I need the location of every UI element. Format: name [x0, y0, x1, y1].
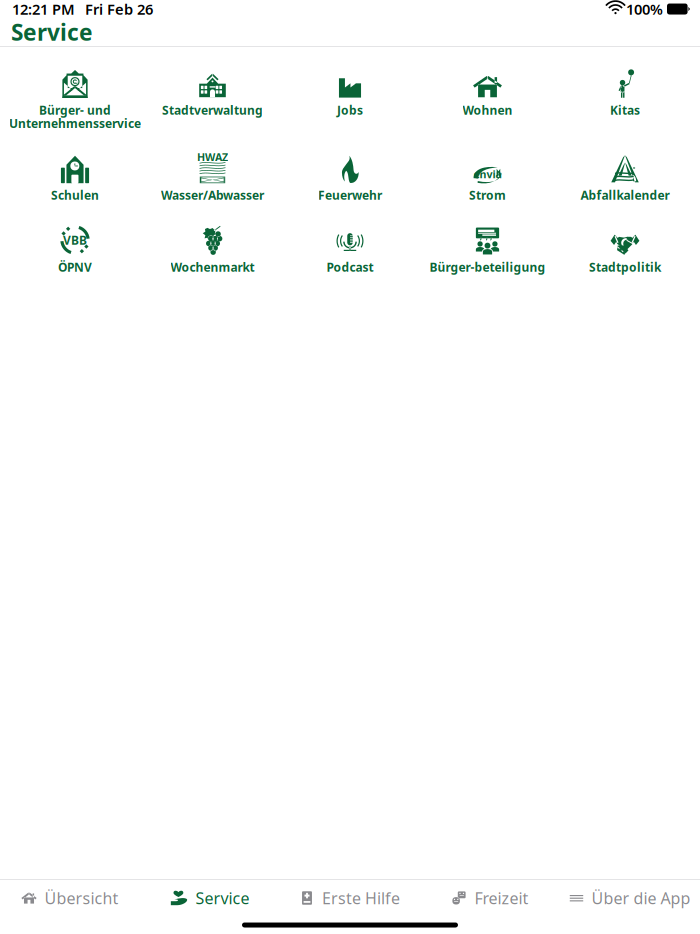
button[interactable]: HWAZ: [144, 153, 281, 201]
button[interactable]: Schulen: [6, 153, 144, 201]
button[interactable]: Bürger- und: [6, 68, 144, 129]
button[interactable]: Freizeit: [420, 880, 560, 916]
staticText: Bürger- und: [39, 102, 111, 118]
button[interactable]: Bürger-beteiligung: [419, 225, 556, 273]
staticText: Kitas: [610, 102, 640, 118]
staticText: Stadtverwaltung: [162, 102, 263, 118]
button[interactable]: Abfallkalender: [556, 153, 694, 201]
staticText: Wochenmarkt: [170, 259, 254, 275]
button[interactable]: Feuerwehr: [281, 153, 419, 201]
staticText: Stadtpolitik: [589, 259, 661, 275]
staticText: Wasser/Abwasser: [161, 187, 264, 203]
staticText: 12:21 PM: [12, 0, 75, 19]
staticText: HWAZ: [197, 150, 228, 164]
button[interactable]: Jobs: [281, 68, 419, 116]
staticText: Wohnen: [462, 102, 512, 118]
button[interactable]: Übersicht: [0, 880, 140, 916]
button[interactable]: Wochenmarkt: [144, 225, 281, 273]
staticText: Freizeit: [474, 887, 528, 909]
button[interactable]: Kitas: [556, 68, 694, 116]
staticText: Über die App: [591, 887, 690, 909]
staticText: Schulen: [51, 187, 99, 203]
button[interactable]: Stadtverwaltung: [144, 68, 281, 116]
button[interactable]: Stadtpolitik: [556, 225, 694, 273]
staticText: Unternehmensservice: [9, 115, 141, 131]
staticText: Übersicht: [44, 887, 118, 909]
staticText: VBB: [63, 232, 87, 248]
staticText: Jobs: [337, 102, 363, 118]
staticText: Service: [195, 887, 249, 909]
staticText: Abfallkalender: [580, 187, 669, 203]
staticText: Feuerwehr: [318, 187, 382, 203]
staticText: Strom: [469, 187, 506, 203]
staticText: Fri Feb 26: [85, 0, 153, 19]
staticText: Bürger-beteiligung: [429, 259, 545, 275]
button[interactable]: Über die App: [560, 880, 700, 916]
button[interactable]: Podcast: [281, 225, 419, 273]
button[interactable]: Erste Hilfe: [280, 880, 420, 916]
button[interactable]: Wohnen: [419, 68, 556, 116]
staticText: Service: [11, 17, 93, 47]
button[interactable]: envia: [419, 153, 556, 201]
staticText: Podcast: [326, 259, 373, 275]
staticText: envia: [473, 167, 501, 181]
staticText: 100%: [626, 0, 663, 19]
button[interactable]: Service: [140, 880, 280, 916]
button[interactable]: VBB: [6, 225, 144, 273]
staticText: Erste Hilfe: [322, 887, 400, 909]
staticText: ÖPNV: [58, 259, 92, 275]
